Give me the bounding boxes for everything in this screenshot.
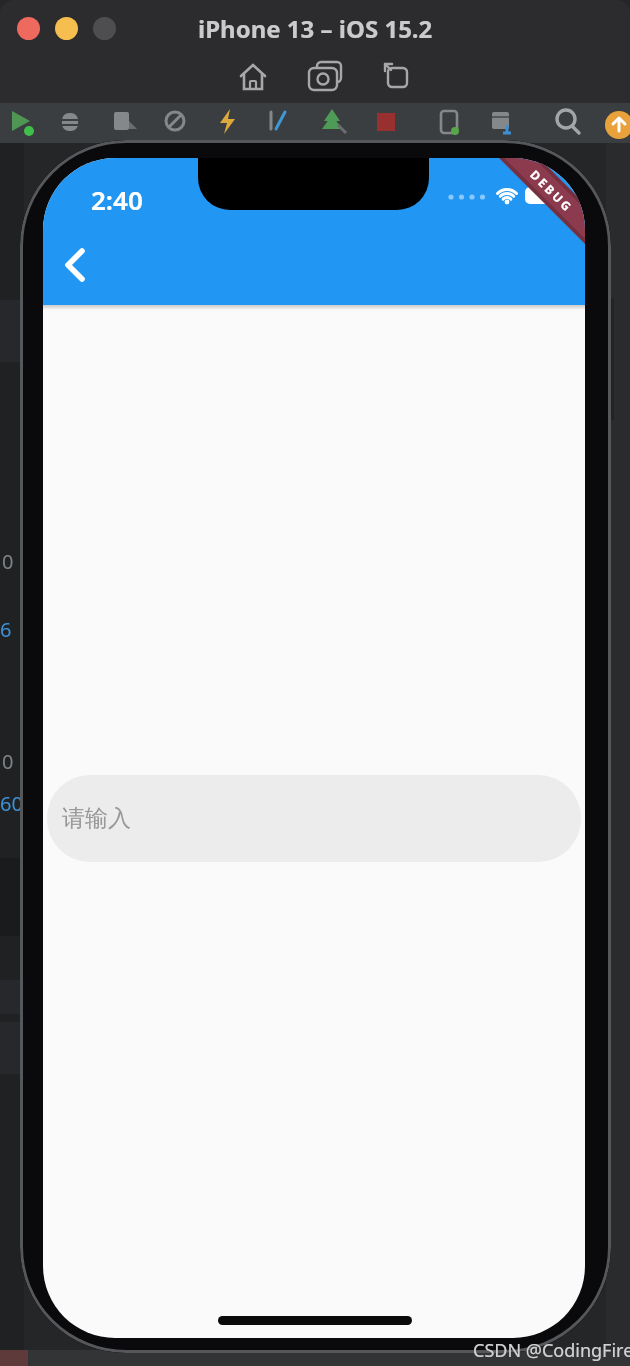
staticText: 0: [2, 548, 14, 575]
staticText: CSDN @CodingFire: [473, 1338, 630, 1363]
staticText: 0: [2, 748, 14, 775]
staticText: 6: [0, 616, 12, 643]
button[interactable]: [238, 61, 268, 91]
button[interactable]: [55, 17, 78, 40]
staticText: iPhone 13 – iOS 15.2: [198, 12, 433, 45]
staticText: 请输入: [62, 804, 131, 833]
button[interactable]: [93, 17, 116, 40]
staticText: DEBUG: [527, 166, 577, 216]
staticText: 2:40: [91, 182, 143, 217]
staticText: 60: [0, 790, 23, 817]
button[interactable]: 请输入: [47, 775, 581, 862]
button[interactable]: [65, 248, 85, 282]
button[interactable]: [17, 17, 40, 40]
button[interactable]: [382, 61, 412, 91]
button[interactable]: [308, 61, 344, 91]
